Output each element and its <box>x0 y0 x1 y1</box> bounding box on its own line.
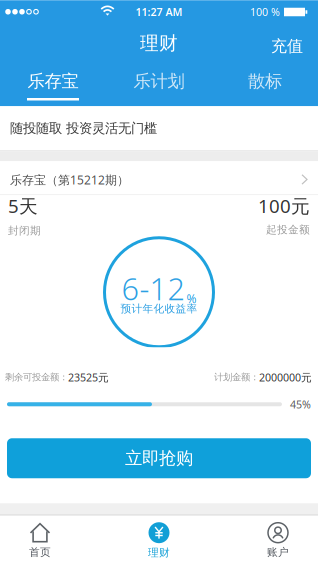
staticText: 乐存宝（第15212期） <box>10 172 129 188</box>
staticText: 散标 <box>248 71 282 92</box>
button[interactable]: 乐计划 <box>106 64 212 106</box>
staticText: 100元 <box>258 193 310 218</box>
staticText: 23525元 <box>68 370 109 384</box>
staticText: 账户 <box>267 546 289 559</box>
staticText: 随投随取 投资灵活无门槛 <box>10 120 157 136</box>
staticText: 理财 <box>140 32 178 55</box>
staticText: 100 % <box>250 5 280 19</box>
staticText: 2000000元 <box>259 370 312 384</box>
button[interactable]: 乐存宝 <box>0 64 106 106</box>
staticText: 11:27 AM <box>135 5 182 19</box>
button[interactable]: 首页 <box>0 516 80 566</box>
staticText: 充值 <box>271 36 303 56</box>
staticText: 预计年化收益率 <box>120 302 197 315</box>
button[interactable]: 立即抢购 <box>7 438 311 478</box>
staticText: 立即抢购 <box>125 448 193 469</box>
staticText: 乐存宝 <box>27 71 78 92</box>
staticText: 乐计划 <box>133 71 184 92</box>
staticText: 45% <box>290 397 311 411</box>
staticText: 首页 <box>29 546 51 559</box>
staticText: 剩余可投金额： <box>5 371 68 383</box>
button[interactable]: 账户 <box>238 516 318 566</box>
button[interactable]: 理财 <box>119 516 199 566</box>
button[interactable]: 乐存宝（第15212期） <box>0 161 318 195</box>
staticText: % <box>186 291 196 307</box>
button[interactable]: 散标 <box>212 64 318 106</box>
staticText: 计划金额： <box>214 371 259 383</box>
button[interactable]: 充值 <box>262 25 312 67</box>
staticText: 封闭期 <box>8 224 41 237</box>
staticText: 起投金额 <box>266 223 310 236</box>
staticText: 理财 <box>148 546 170 559</box>
staticText: 6-12 <box>121 268 185 309</box>
staticText: 5天 <box>8 193 38 218</box>
